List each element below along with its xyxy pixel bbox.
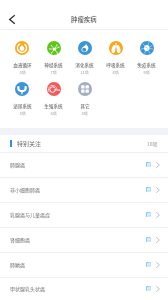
button[interactable]: 血液循环 — [6, 30, 38, 71]
staticText: 免疫系统 — [137, 62, 156, 69]
staticText: 肺腺癌 — [10, 161, 26, 168]
staticText: 非小细胞肺癌 — [10, 186, 41, 193]
staticText: 10项 — [147, 140, 158, 147]
staticText: 呼吸系统 — [106, 62, 125, 69]
button[interactable]: 乳腺癌与儿童癌症 — [0, 202, 168, 227]
staticText: 肺鳞癌 — [10, 261, 26, 268]
button[interactable]: 消化系统 — [69, 30, 100, 71]
staticText: 9项 — [143, 69, 150, 75]
staticText: 乳腺癌与儿童癌症 — [10, 211, 51, 218]
staticText: 肿瘤疾病 — [71, 15, 97, 24]
button[interactable]: 其它 — [69, 71, 100, 112]
staticText: 消化系统 — [75, 62, 94, 69]
staticText: 泌尿系统 — [13, 103, 32, 110]
button[interactable]: 肺腺癌 — [0, 152, 168, 177]
button[interactable]: Back — [0, 10, 24, 29]
staticText: 低 — [147, 162, 151, 167]
staticText: 3项 — [81, 110, 88, 116]
staticText: 3项 — [19, 110, 26, 116]
staticText: 血液循环 — [13, 62, 32, 69]
button[interactable]: 泌尿系统 — [6, 71, 38, 112]
button[interactable]: 肺鳞癌 — [0, 252, 168, 277]
button[interactable]: 免疫系统 — [131, 30, 162, 71]
button[interactable]: 非小细胞肺癌 — [0, 177, 168, 202]
button[interactable]: 呼吸系统 — [100, 30, 131, 71]
button[interactable]: 神经系统 — [38, 30, 69, 71]
staticText: 3项 — [19, 69, 26, 75]
staticText: 8项 — [112, 69, 119, 75]
staticText: 低 — [147, 187, 151, 192]
staticText: 生殖系统 — [44, 103, 63, 110]
staticText: 神经系统 — [44, 62, 63, 69]
staticText: 低 — [147, 286, 151, 291]
staticText: 特别关注 — [17, 139, 42, 148]
staticText: 肾细胞癌 — [10, 236, 31, 243]
staticText: 低 — [147, 237, 151, 242]
staticText: 6项 — [50, 110, 57, 116]
button[interactable]: 肾细胞癌 — [0, 227, 168, 252]
button[interactable]: 生殖系统 — [38, 71, 69, 112]
staticText: 11项 — [80, 69, 89, 75]
button[interactable]: 甲状腺乳头状癌 — [0, 277, 168, 300]
staticText: 其它 — [80, 103, 90, 110]
staticText: 低 — [147, 212, 151, 217]
staticText: 7项 — [50, 69, 57, 75]
staticText: 甲状腺乳头状癌 — [10, 285, 46, 292]
staticText: 低 — [147, 262, 151, 267]
